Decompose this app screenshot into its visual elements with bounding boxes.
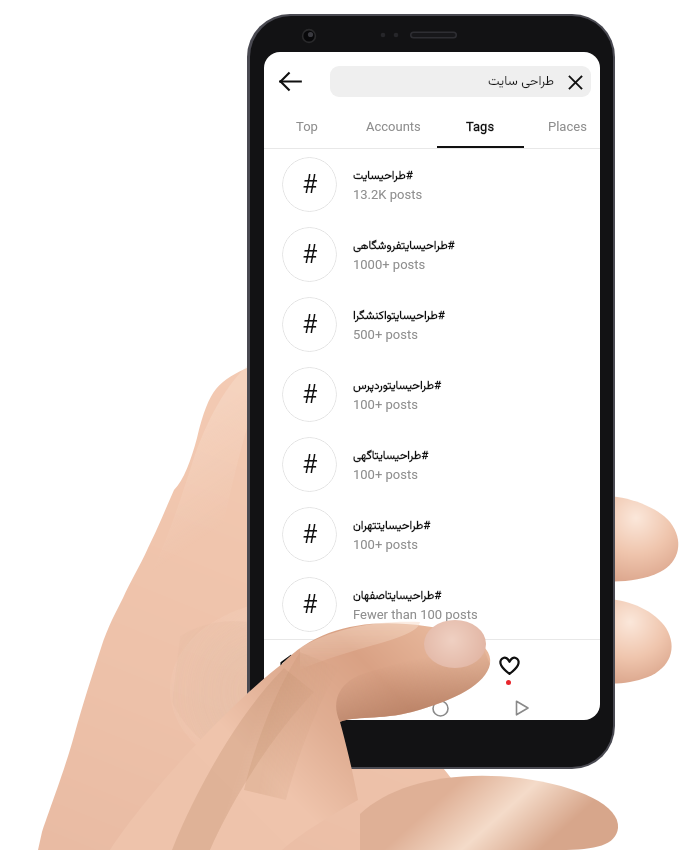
button[interactable]: Home button xyxy=(431,699,449,717)
button[interactable]: Accounts xyxy=(350,110,437,148)
button[interactable]: # xyxy=(264,289,600,359)
button[interactable]: # xyxy=(264,359,600,429)
button[interactable]: # xyxy=(264,429,600,499)
staticText: طراحیسایت# xyxy=(353,167,413,185)
button[interactable]: Back xyxy=(278,69,302,93)
button[interactable]: # xyxy=(264,219,600,289)
button[interactable]: Back button xyxy=(513,699,531,717)
button[interactable]: Tags xyxy=(437,110,524,148)
staticText: 1000+ posts xyxy=(353,257,426,272)
button[interactable]: طراحی سایت xyxy=(330,66,591,97)
staticText: طراحیسایتفروشگاهی# xyxy=(353,237,455,255)
staticText: Places xyxy=(548,119,587,134)
button[interactable]: Activity xyxy=(496,652,522,678)
staticText: طراحیسایتاگهی# xyxy=(353,447,429,465)
staticText: Accounts xyxy=(366,119,421,134)
staticText: طراحی سایت xyxy=(488,72,555,92)
button[interactable]: Places xyxy=(524,110,600,148)
staticText: # xyxy=(302,380,318,409)
button[interactable]: # xyxy=(264,569,600,639)
staticText: Top xyxy=(296,119,318,134)
staticText: 100+ posts xyxy=(353,537,418,552)
staticText: # xyxy=(302,520,318,549)
staticText: طراحیسایتاصفهان# xyxy=(353,587,442,605)
staticText: # xyxy=(302,310,318,339)
button[interactable]: # xyxy=(264,499,600,569)
staticText: Fewer than 100 posts xyxy=(353,607,478,622)
button[interactable]: # xyxy=(264,149,600,219)
other: Clear search xyxy=(567,74,583,90)
staticText: 100+ posts xyxy=(353,467,418,482)
staticText: Tags xyxy=(466,119,495,134)
staticText: # xyxy=(302,590,318,619)
staticText: طراحیسایتواکنشگرا# xyxy=(353,307,445,325)
staticText: 13.2K posts xyxy=(353,187,423,202)
staticText: طراحیسایتوردپرس# xyxy=(353,377,441,395)
button[interactable]: Home xyxy=(279,653,303,677)
staticText: # xyxy=(302,450,318,479)
staticText: # xyxy=(302,170,318,199)
staticText: طراحیسایتتهران# xyxy=(353,517,431,535)
button[interactable]: Add post xyxy=(429,653,453,677)
staticText: 500+ posts xyxy=(353,327,418,342)
staticText: 100+ posts xyxy=(353,397,418,412)
staticText: # xyxy=(302,240,318,269)
button[interactable]: Top xyxy=(264,110,350,148)
